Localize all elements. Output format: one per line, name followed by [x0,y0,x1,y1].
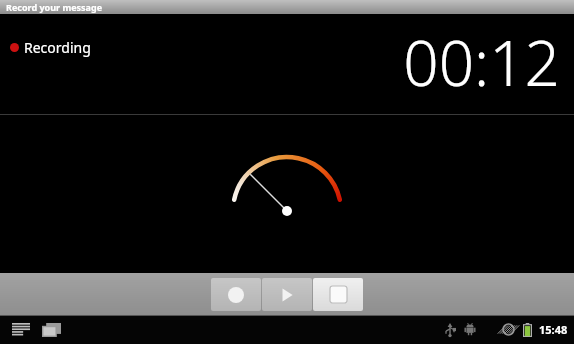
button[interactable]: Play [262,278,312,311]
button[interactable]: Recent apps [38,317,64,343]
staticText: 15:48 [539,322,568,337]
staticText: Record your message [6,1,103,13]
button[interactable]: Stop [313,278,363,311]
staticText: Recording [24,38,91,57]
button[interactable]: Back [8,317,34,343]
button[interactable]: Record [211,278,261,311]
staticText: 00:12 [403,20,560,104]
